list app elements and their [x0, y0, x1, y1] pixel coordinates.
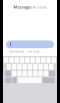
- button[interactable]: Key: [9, 57, 14, 63]
- button[interactable]: Key: [7, 64, 11, 70]
- button[interactable]: Key: [38, 71, 43, 76]
- button[interactable]: Key: [25, 57, 30, 63]
- button[interactable]: Key: [22, 64, 27, 70]
- button[interactable]: Key: [33, 64, 37, 70]
- button[interactable]: Key: [12, 77, 17, 83]
- button[interactable]: Key: [38, 64, 43, 70]
- button[interactable]: Key: [49, 64, 53, 70]
- button[interactable]: Key: [4, 57, 8, 63]
- button[interactable]: Key: [44, 64, 48, 70]
- button[interactable]: Key: [12, 64, 16, 70]
- button[interactable]: Key: [5, 77, 11, 83]
- button[interactable]: Key: [20, 57, 24, 63]
- staticText: Delivered · Just now: [10, 50, 39, 53]
- button[interactable]: Key: [22, 71, 27, 76]
- button[interactable]: Key: [17, 71, 22, 76]
- button[interactable]: Key: [36, 57, 40, 63]
- button[interactable]: Key: [15, 57, 19, 63]
- staticText: Account: [33, 4, 47, 10]
- button[interactable]: Key: [46, 57, 51, 63]
- button[interactable]: Messages: [3, 4, 57, 9]
- button[interactable]: Key: [33, 71, 37, 76]
- button[interactable]: Key: [52, 57, 56, 63]
- button[interactable]: Key: [42, 77, 55, 83]
- button[interactable]: Key: [41, 57, 45, 63]
- button[interactable]: Key: [17, 64, 22, 70]
- button[interactable]: Key: [30, 57, 35, 63]
- button[interactable]: Key: [28, 64, 32, 70]
- staticText: Messages: [13, 4, 31, 10]
- button[interactable]: Key: [18, 77, 42, 83]
